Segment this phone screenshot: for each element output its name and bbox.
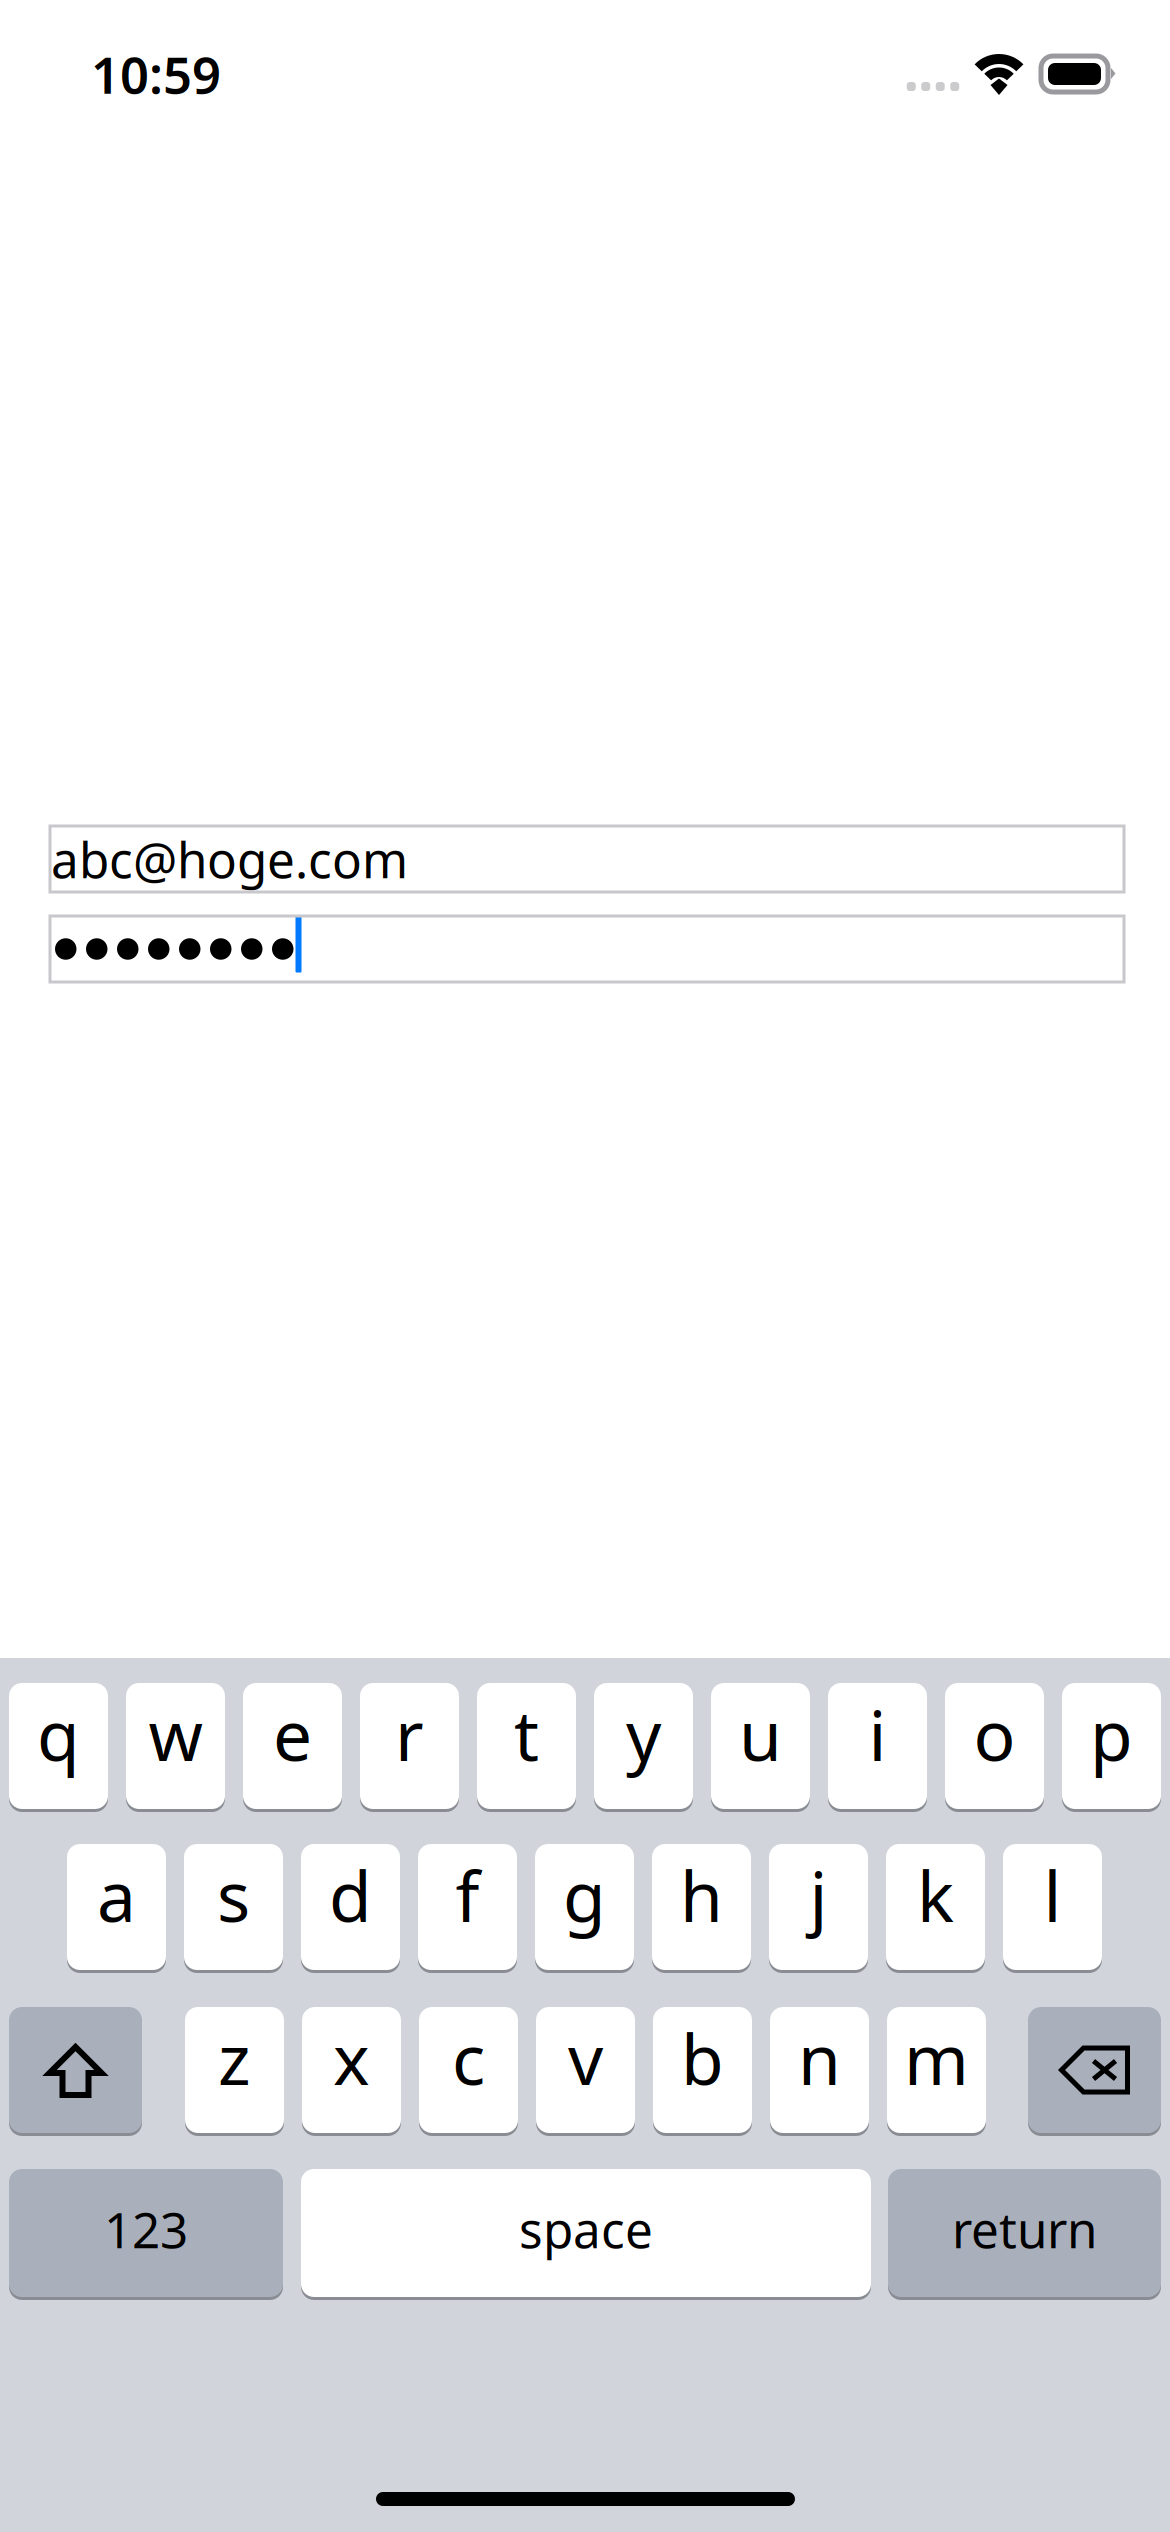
staticText: t (514, 1688, 539, 1780)
button[interactable]: b (653, 2007, 752, 2136)
staticText: r (395, 1688, 424, 1780)
staticText: q (37, 1688, 80, 1780)
staticText: x (333, 2012, 370, 2104)
staticText: h (680, 1849, 723, 1941)
staticText: j (809, 1849, 827, 1941)
button[interactable]: j (769, 1844, 868, 1973)
button[interactable]: space (301, 2169, 871, 2300)
button[interactable]: o (945, 1683, 1044, 1812)
staticText: v (568, 2012, 603, 2104)
staticText: z (218, 2012, 251, 2104)
button[interactable]: p (1062, 1683, 1161, 1812)
staticText: u (739, 1688, 782, 1780)
button[interactable]: Delete (1028, 2007, 1161, 2136)
staticText: s (217, 1849, 250, 1941)
staticText: e (273, 1688, 312, 1780)
staticText: return (952, 2196, 1097, 2262)
button[interactable]: a (67, 1844, 166, 1973)
button[interactable]: l (1003, 1844, 1102, 1973)
button[interactable]: e (243, 1683, 342, 1812)
staticText: space (519, 2196, 653, 2262)
button[interactable]: n (770, 2007, 869, 2136)
button[interactable]: t (477, 1683, 576, 1812)
button[interactable]: k (886, 1844, 985, 1973)
button[interactable]: u (711, 1683, 810, 1812)
button[interactable]: m (887, 2007, 986, 2136)
staticText: abc@hoge.com (51, 826, 408, 892)
staticText: c (452, 2012, 485, 2104)
button[interactable]: z (185, 2007, 284, 2136)
staticText: w (148, 1688, 202, 1780)
staticText: b (681, 2012, 724, 2104)
staticText: 123 (104, 2196, 188, 2262)
staticText: i (868, 1688, 886, 1780)
button[interactable]: c (419, 2007, 518, 2136)
button[interactable]: q (9, 1683, 108, 1812)
button[interactable]: Email address (50, 826, 1124, 892)
button[interactable]: x (302, 2007, 401, 2136)
button[interactable]: r (360, 1683, 459, 1812)
staticText: g (563, 1849, 606, 1941)
staticText: n (798, 2012, 841, 2104)
staticText: p (1090, 1688, 1133, 1780)
staticText: a (97, 1849, 136, 1941)
button[interactable]: 123 (9, 2169, 283, 2300)
button[interactable]: g (535, 1844, 634, 1973)
button[interactable]: Shift (9, 2007, 142, 2136)
button[interactable]: d (301, 1844, 400, 1973)
button[interactable]: w (126, 1683, 225, 1812)
staticText: d (329, 1849, 372, 1941)
staticText: m (904, 2012, 969, 2104)
staticText: l (1043, 1849, 1061, 1941)
button[interactable]: Password (50, 916, 1124, 982)
staticText: o (973, 1688, 1015, 1780)
button[interactable]: v (536, 2007, 635, 2136)
button[interactable]: f (418, 1844, 517, 1973)
staticText: y (626, 1688, 661, 1780)
button[interactable]: i (828, 1683, 927, 1812)
button[interactable]: s (184, 1844, 283, 1973)
staticText: 10:59 (91, 40, 221, 108)
button[interactable]: y (594, 1683, 693, 1812)
staticText: f (455, 1849, 479, 1941)
button[interactable]: return (888, 2169, 1161, 2300)
staticText: k (917, 1849, 954, 1941)
button[interactable]: h (652, 1844, 751, 1973)
